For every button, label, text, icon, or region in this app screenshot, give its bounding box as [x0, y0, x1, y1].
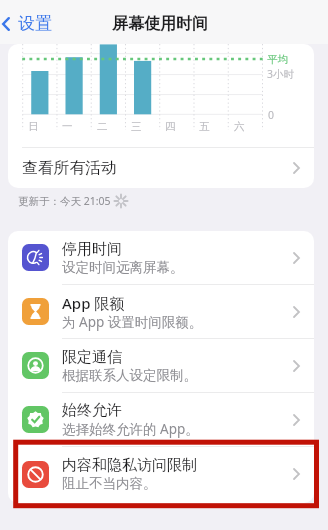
- staticText: 设置: [18, 13, 52, 34]
- staticText: 六: [234, 120, 245, 133]
- staticText: 限定通信: [62, 348, 122, 367]
- staticText: 0: [268, 108, 275, 122]
- button[interactable]: 内容和隐私访问限制: [8, 447, 314, 501]
- staticText: 停用时间: [62, 240, 122, 259]
- staticText: 三: [131, 120, 142, 133]
- staticText: 更新于：今天 21:05: [18, 194, 111, 208]
- button[interactable]: 限定通信: [8, 339, 314, 392]
- staticText: 3小时: [267, 67, 295, 81]
- staticText: 阻止不当内容。: [62, 475, 157, 492]
- staticText: 选择始终允许的 App。: [62, 420, 199, 438]
- staticText: 一: [62, 120, 73, 133]
- staticText: 屏幕使用时间: [112, 14, 208, 34]
- button[interactable]: 停用时间: [8, 231, 314, 284]
- button[interactable]: App 限额: [8, 285, 314, 338]
- staticText: 日: [28, 120, 39, 133]
- button[interactable]: 始终允许: [8, 393, 314, 446]
- button[interactable]: 设置: [0, 8, 60, 39]
- staticText: 为 App 设置时间限额。: [62, 313, 203, 331]
- staticText: 五: [199, 120, 210, 133]
- button[interactable]: 查看所有活动: [8, 148, 314, 188]
- staticText: 设定时间远离屏幕。: [62, 259, 184, 276]
- staticText: 始终允许: [62, 401, 122, 420]
- staticText: 平均: [267, 53, 288, 66]
- staticText: App 限额: [62, 293, 125, 313]
- staticText: 内容和隐私访问限制: [62, 456, 197, 475]
- staticText: 根据联系人设定限制。: [62, 367, 197, 384]
- staticText: 二: [97, 120, 108, 133]
- staticText: 查看所有活动: [22, 158, 117, 178]
- staticText: 四: [165, 120, 176, 133]
